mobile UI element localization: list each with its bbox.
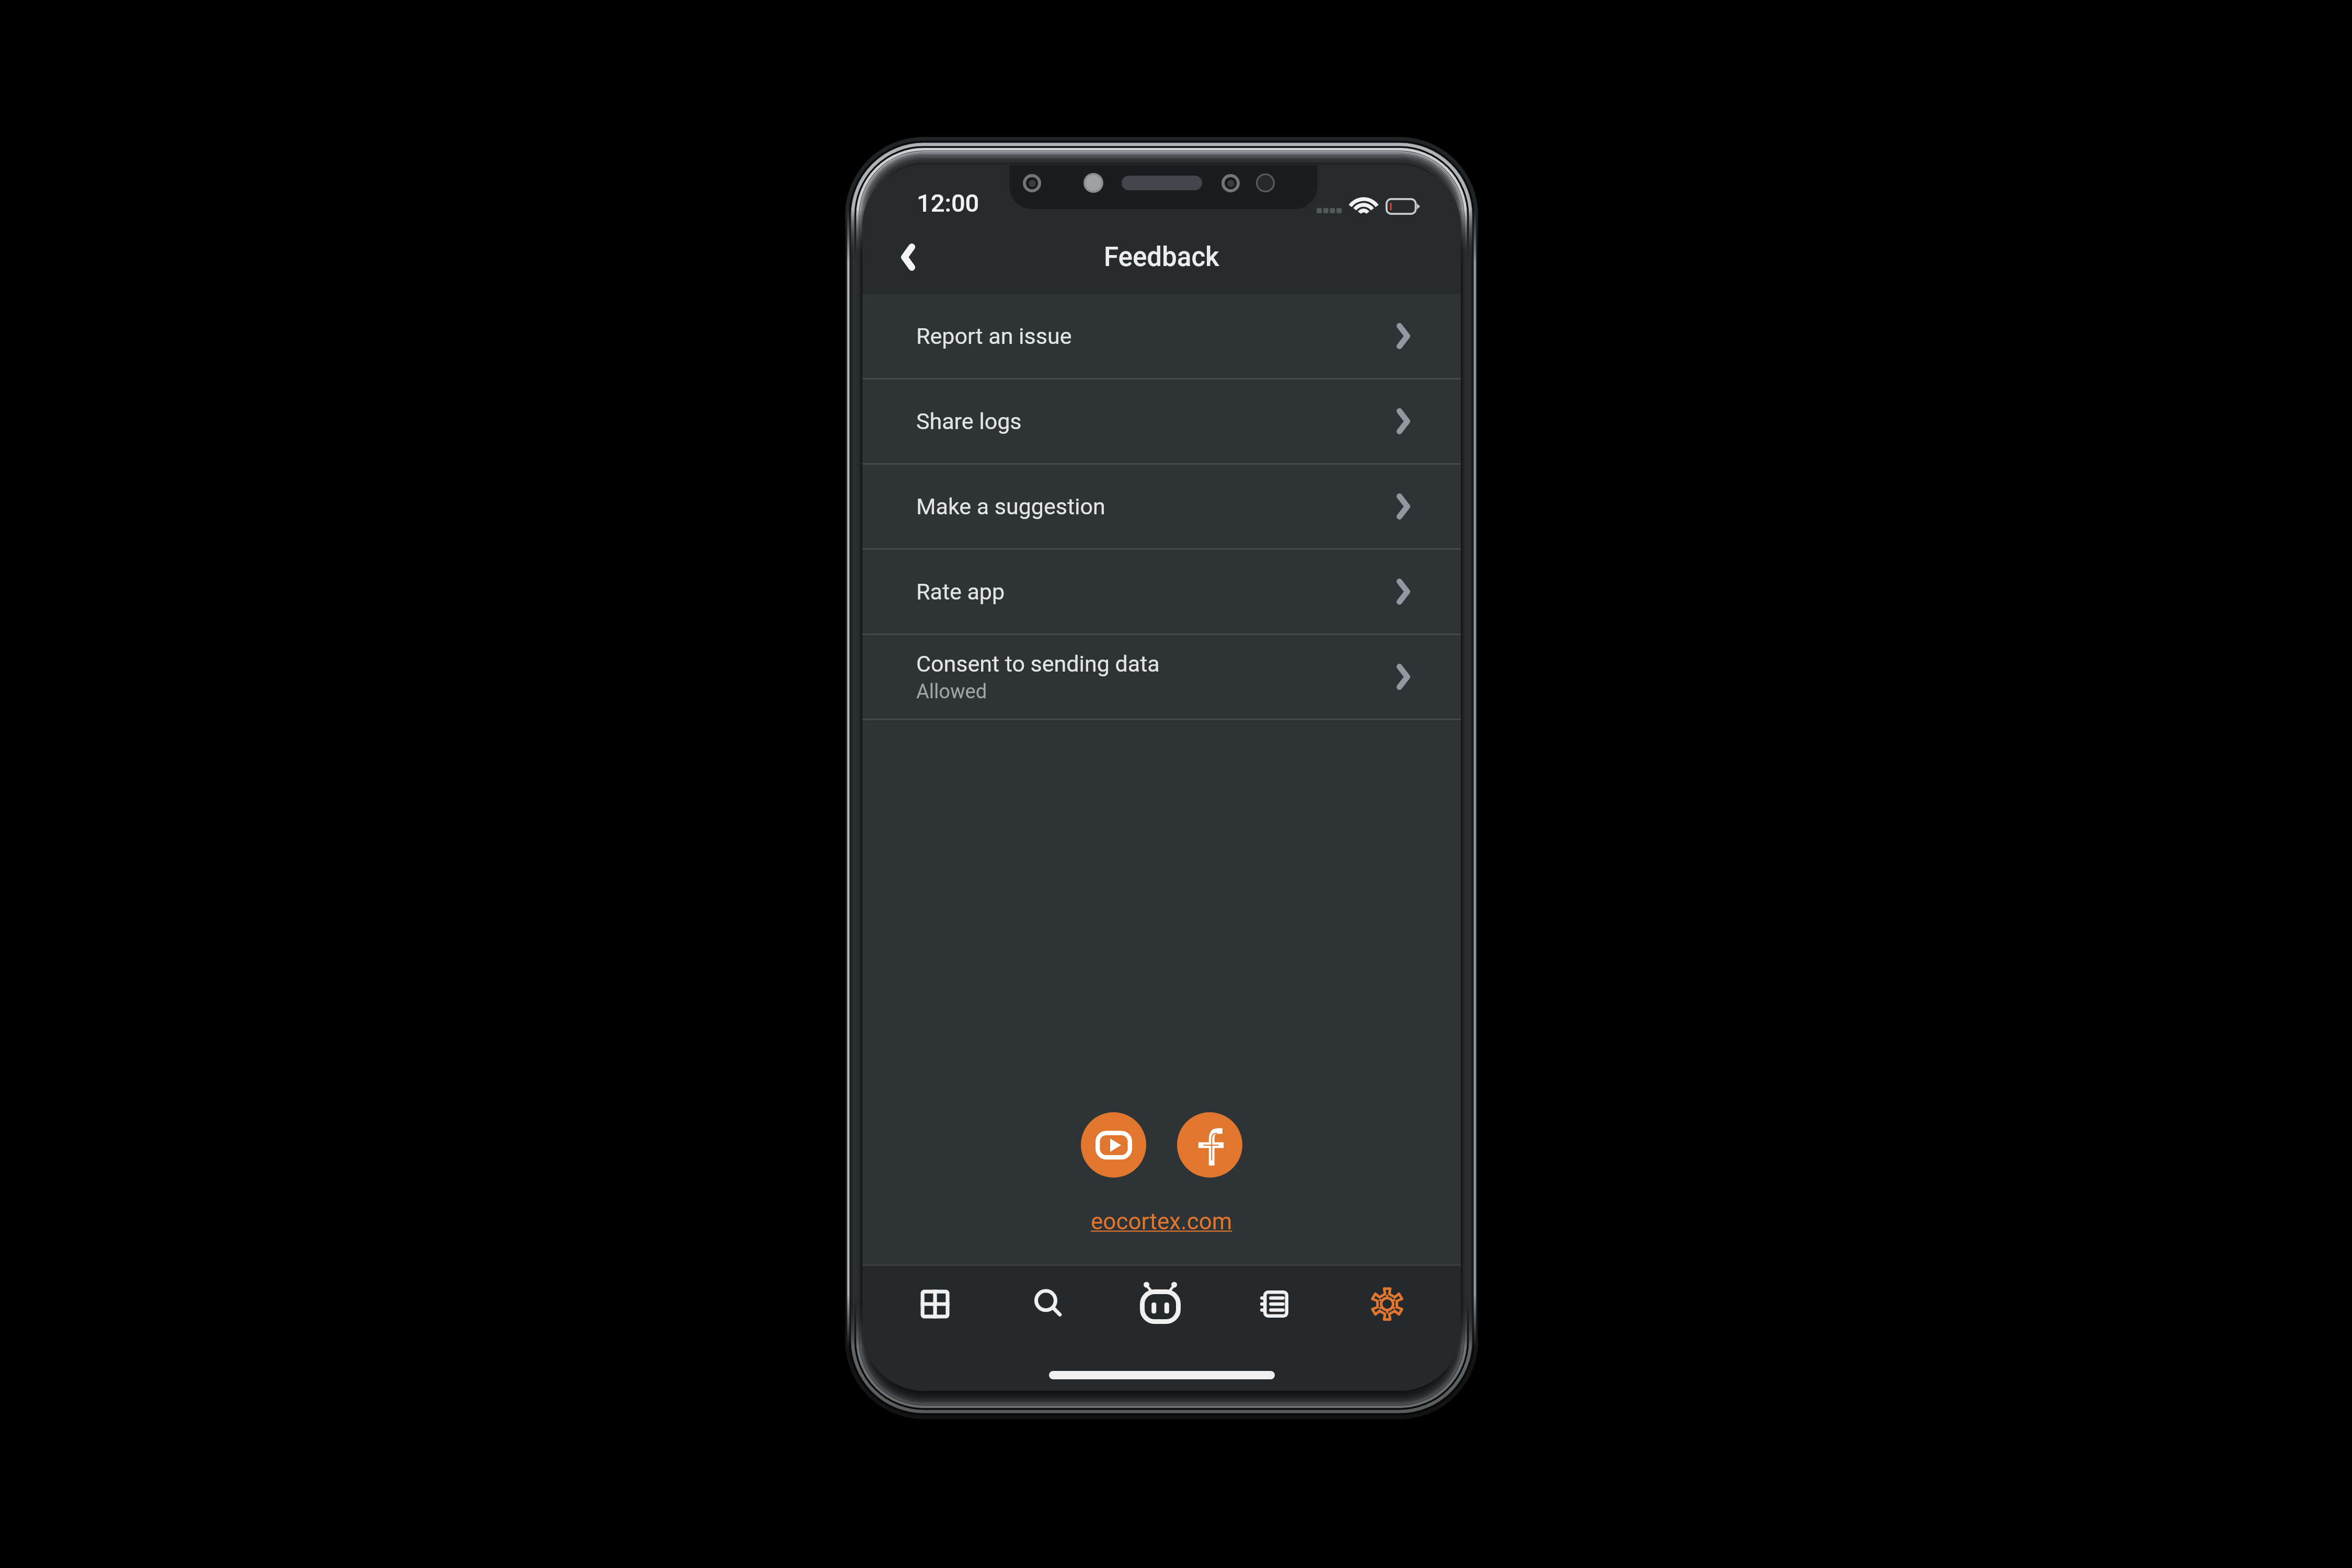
button[interactable]: Facebook bbox=[1177, 1112, 1242, 1178]
button[interactable]: Make a suggestion bbox=[862, 465, 1461, 548]
button[interactable]: Settings bbox=[1350, 1266, 1425, 1342]
button[interactable]: Search bbox=[1011, 1266, 1086, 1342]
button[interactable]: Back bbox=[877, 226, 939, 289]
button[interactable]: eocortex.com bbox=[1091, 1208, 1232, 1235]
button[interactable]: Consent to sending data bbox=[862, 635, 1461, 719]
staticText: Report an issue bbox=[916, 323, 1072, 349]
button[interactable]: Dashboard bbox=[897, 1266, 973, 1342]
button[interactable]: YouTube bbox=[1081, 1112, 1146, 1178]
staticText: 12:00 bbox=[917, 189, 979, 217]
button[interactable]: Rate app bbox=[862, 550, 1461, 633]
button[interactable]: Report an issue bbox=[862, 294, 1461, 378]
staticText: Rate app bbox=[916, 579, 1005, 605]
button[interactable]: Assistant bbox=[1123, 1266, 1198, 1342]
staticText: Allowed bbox=[916, 680, 987, 704]
staticText: Consent to sending data bbox=[916, 651, 1160, 677]
staticText: Feedback bbox=[1104, 241, 1219, 273]
staticText: Make a suggestion bbox=[916, 493, 1105, 520]
staticText: Share logs bbox=[916, 408, 1022, 434]
button[interactable]: Share logs bbox=[862, 379, 1461, 463]
button[interactable]: Events bbox=[1236, 1266, 1311, 1342]
